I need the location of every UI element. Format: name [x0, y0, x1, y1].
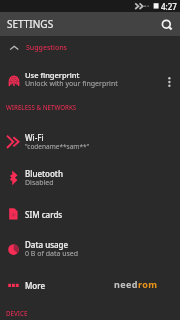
staticText: Wi-Fi	[25, 132, 44, 143]
staticText: More	[25, 280, 46, 291]
staticText: 4:27	[161, 1, 177, 12]
button[interactable]: Suggestions	[0, 38, 180, 58]
button[interactable]: Search	[157, 12, 179, 36]
staticText: rom	[138, 278, 158, 290]
button[interactable]: Bluetooth	[0, 160, 180, 196]
staticText: SETTINGS	[7, 17, 54, 31]
button[interactable]: More options	[161, 62, 178, 98]
button[interactable]: SIM cards	[0, 196, 180, 232]
button[interactable]: Wi-Fi	[0, 124, 180, 160]
button[interactable]: Data usage	[0, 231, 180, 267]
staticText: SIM cards	[25, 209, 63, 220]
button[interactable]: More	[0, 267, 180, 303]
staticText: "codename**sam**"	[25, 142, 90, 151]
button[interactable]: Use fingerprint	[0, 62, 180, 98]
staticText: Suggestions	[26, 43, 67, 53]
staticText: Bluetooth	[25, 168, 63, 179]
staticText: DEVICE	[6, 309, 28, 317]
staticText: Unlock with your fingerprint	[25, 79, 118, 89]
staticText: Disabled	[25, 178, 54, 188]
staticText: Data usage	[25, 239, 69, 250]
staticText: need	[114, 278, 138, 290]
staticText: Use fingerprint	[25, 70, 80, 80]
staticText: WIRELESS & NETWORKS	[6, 103, 77, 111]
staticText: 0 B of data used	[25, 249, 79, 259]
